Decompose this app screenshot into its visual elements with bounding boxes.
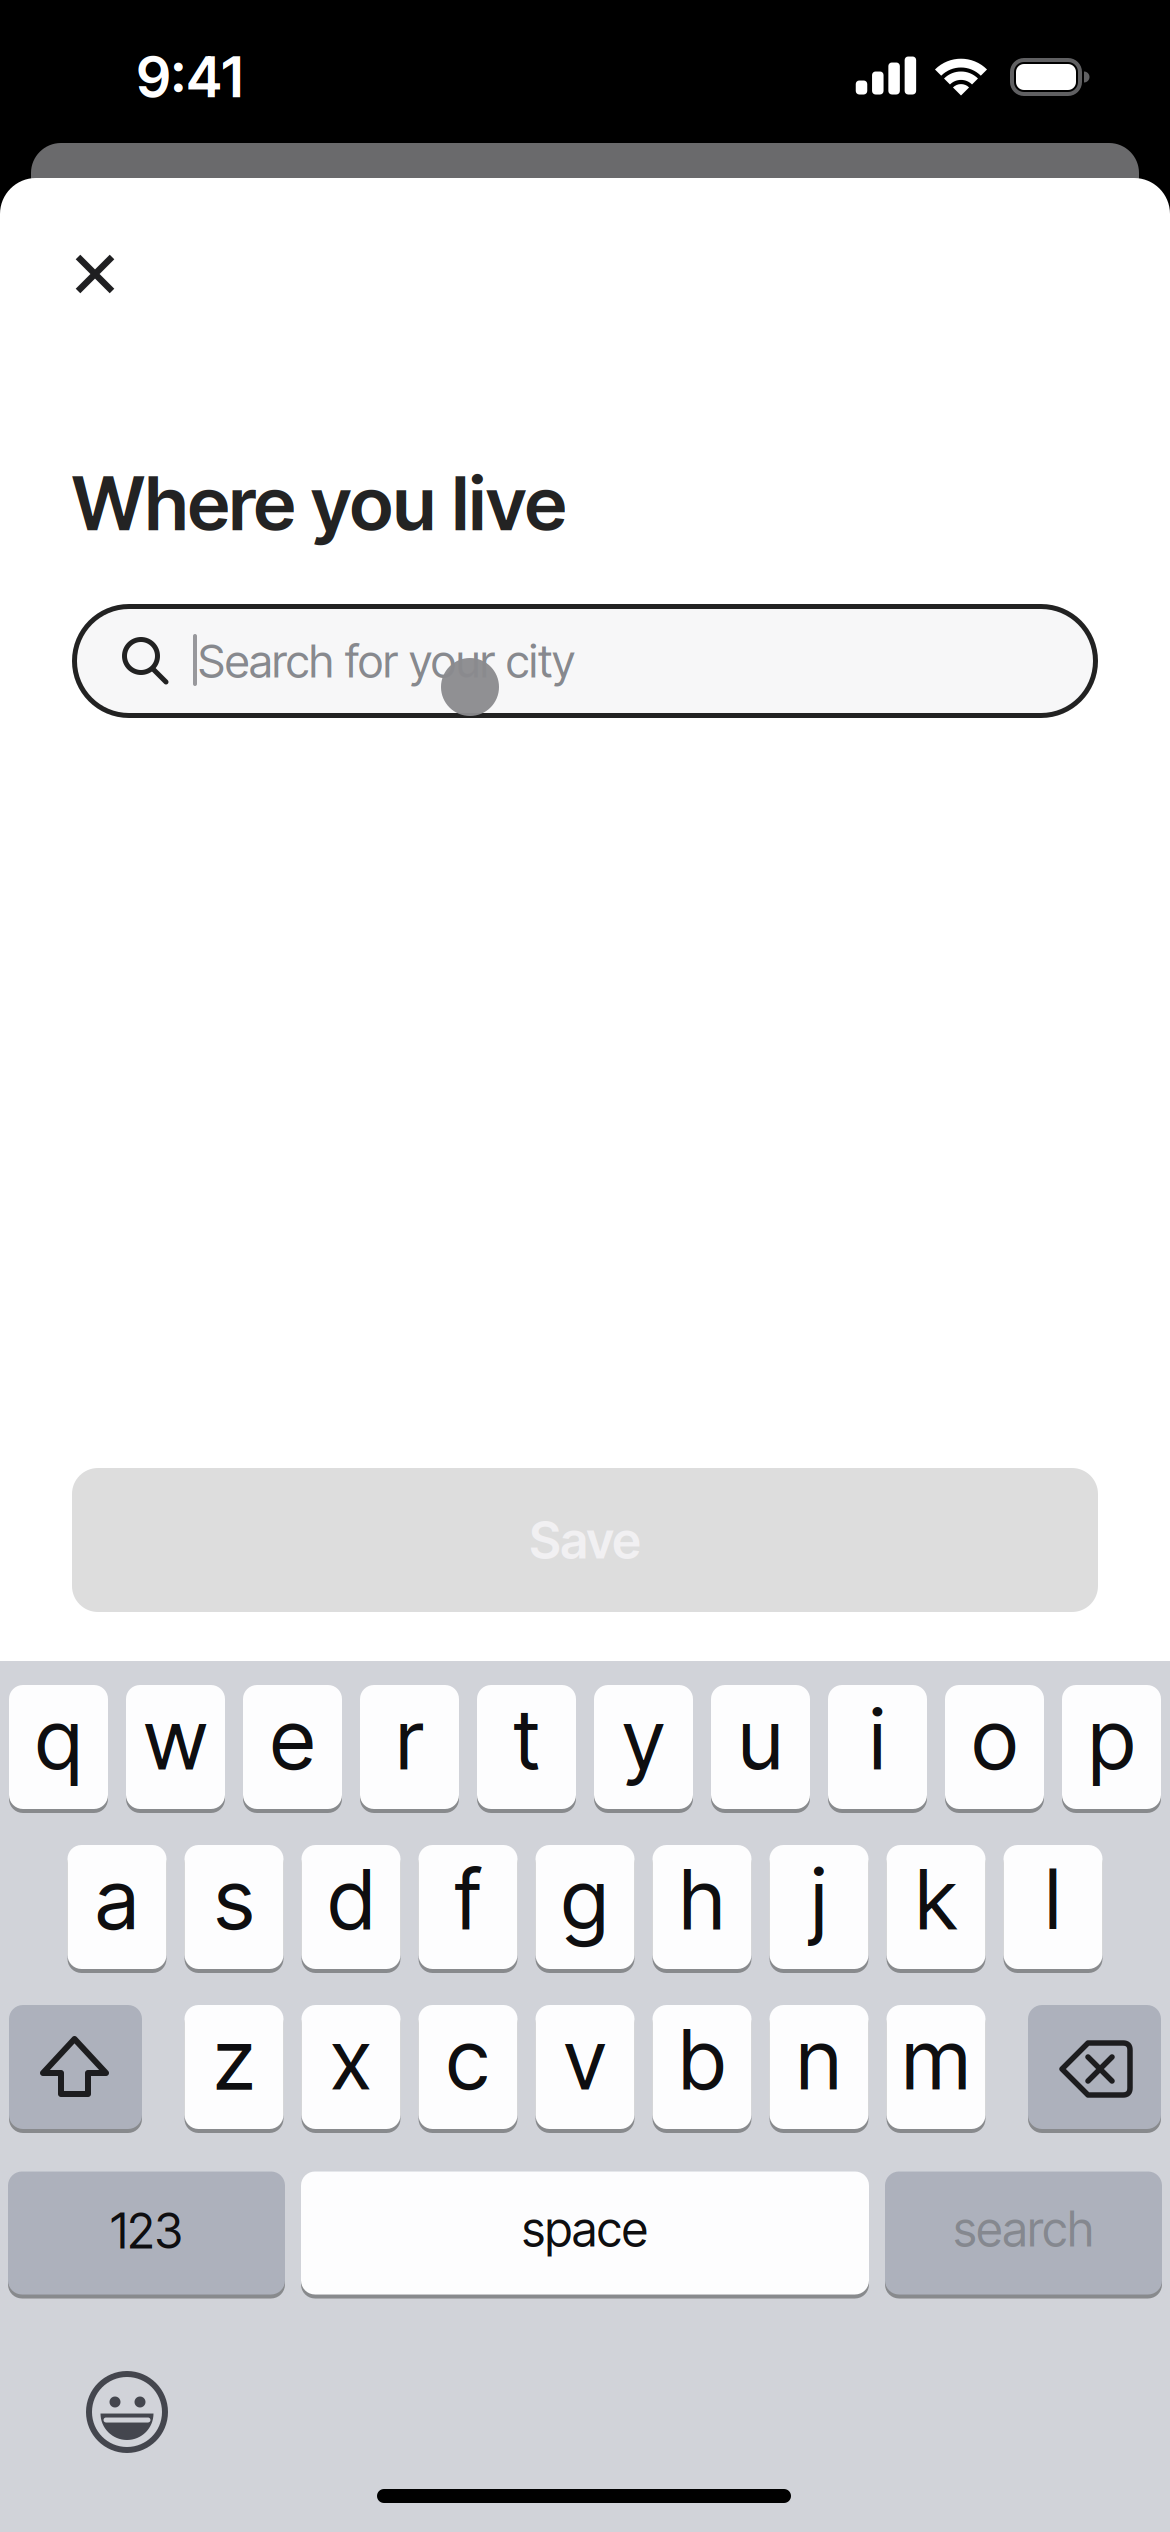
button[interactable]: n [769,2005,868,2129]
staticText: m [902,2009,970,2109]
button[interactable]: u [711,1685,810,1809]
staticText: l [1045,1849,1061,1949]
staticText: j [811,1849,827,1949]
staticText: i [869,1689,885,1789]
button[interactable]: a [67,1845,166,1969]
staticText: s [214,1849,253,1949]
button[interactable]: Search for your city [72,604,1098,718]
button[interactable]: Save [72,1468,1098,1612]
staticText: e [270,1689,314,1789]
staticText: k [915,1849,956,1949]
button[interactable]: s [184,1845,283,1969]
staticText: search [953,2200,1093,2258]
button[interactable]: c [418,2005,517,2129]
button[interactable]: z [184,2005,283,2129]
staticText: Where you live [72,458,566,548]
button[interactable]: l [1003,1845,1102,1969]
staticText: f [455,1849,481,1949]
button[interactable]: Shift [9,2005,142,2129]
button[interactable]: g [535,1845,634,1969]
staticText: a [95,1849,138,1949]
staticText: b [679,2009,725,2109]
staticText: n [796,2009,841,2109]
button[interactable]: o [945,1685,1044,1809]
staticText: d [328,1849,374,1949]
staticText: y [622,1689,664,1789]
button[interactable]: j [769,1845,868,1969]
staticText: Search for your city [198,634,575,688]
button[interactable]: Emoji [82,2367,172,2457]
staticText: 123 [110,2202,182,2260]
staticText: 9:41 [136,43,243,111]
button[interactable]: d [301,1845,400,1969]
button[interactable]: p [1062,1685,1161,1809]
button[interactable]: search [885,2171,1162,2294]
staticText: h [679,1849,724,1949]
button[interactable]: w [126,1685,225,1809]
button[interactable]: m [886,2005,985,2129]
button[interactable]: space [301,2171,869,2294]
staticText: q [35,1689,81,1789]
staticText: Save [529,1509,640,1571]
staticText: o [972,1689,1017,1789]
button[interactable]: i [828,1685,927,1809]
button[interactable]: Delete [1028,2005,1161,2129]
staticText: r [396,1689,423,1789]
button[interactable]: Close [64,242,126,304]
staticText: w [144,1689,207,1789]
button[interactable]: q [9,1685,108,1809]
button[interactable]: v [535,2005,634,2129]
button[interactable]: k [886,1845,985,1969]
button[interactable]: x [301,2005,400,2129]
button[interactable]: e [243,1685,342,1809]
button[interactable]: b [652,2005,751,2129]
button[interactable]: y [594,1685,693,1809]
button[interactable]: r [360,1685,459,1809]
staticText: u [738,1689,782,1789]
button[interactable]: 123 [8,2171,285,2294]
button[interactable]: f [418,1845,517,1969]
staticText: p [1088,1689,1134,1789]
staticText: space [522,2200,648,2258]
staticText: c [446,2009,489,2109]
staticText: t [513,1689,539,1789]
staticText: x [330,2009,371,2109]
staticText: g [561,1849,608,1949]
button[interactable]: t [477,1685,576,1809]
staticText: z [213,2009,254,2109]
staticText: v [564,2009,606,2109]
button[interactable]: h [652,1845,751,1969]
